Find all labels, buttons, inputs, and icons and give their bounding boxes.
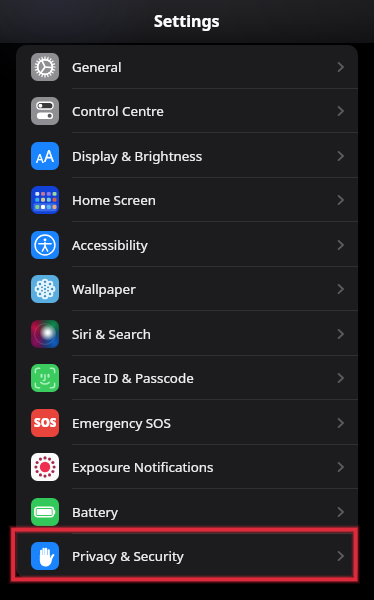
staticText: Battery bbox=[72, 503, 118, 521]
staticText: Accessibility bbox=[72, 236, 148, 254]
staticText: Wallpaper bbox=[72, 280, 136, 298]
staticText: A bbox=[44, 145, 54, 166]
staticText: Settings bbox=[154, 10, 220, 32]
staticText: Face ID & Passcode bbox=[72, 369, 194, 387]
button[interactable]: Home Screen bbox=[16, 178, 358, 222]
button[interactable]: Face ID & Passcode bbox=[16, 356, 358, 400]
button[interactable]: Exposure Notifications bbox=[16, 445, 358, 489]
button[interactable]: Siri & Search bbox=[16, 312, 358, 356]
staticText: SOS bbox=[34, 415, 57, 431]
button[interactable]: Battery bbox=[16, 490, 358, 534]
button[interactable]: Wallpaper bbox=[16, 267, 358, 311]
staticText: Privacy & Security bbox=[72, 547, 184, 565]
button[interactable]: A bbox=[16, 134, 358, 178]
button[interactable]: General bbox=[16, 45, 358, 89]
staticText: Home Screen bbox=[72, 191, 156, 209]
staticText: Exposure Notifications bbox=[72, 458, 214, 476]
staticText: A bbox=[36, 150, 44, 166]
staticText: Siri & Search bbox=[72, 325, 151, 343]
staticText: Control Centre bbox=[72, 102, 164, 120]
button[interactable]: Control Centre bbox=[16, 89, 358, 133]
staticText: General bbox=[72, 58, 122, 76]
button[interactable]: SOS bbox=[16, 401, 358, 445]
button[interactable]: Accessibility bbox=[16, 223, 358, 267]
button[interactable]: Privacy & Security bbox=[16, 534, 358, 578]
staticText: Display & Brightness bbox=[72, 147, 203, 165]
staticText: Emergency SOS bbox=[72, 414, 171, 432]
